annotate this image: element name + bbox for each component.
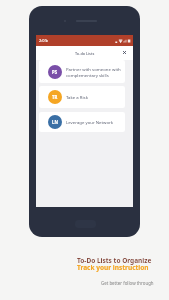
button[interactable]: PS [39,60,125,83]
staticText: Track your instruction [77,263,149,272]
staticText: LN [52,119,58,125]
staticText: Leverage your Network [66,119,114,125]
button[interactable]: LN [39,112,125,132]
staticText: Partner with someone with [66,66,121,72]
staticText: 2:01 [39,38,47,43]
staticText: To-Do Lists to Organize [77,256,152,265]
button[interactable]: TR [39,86,125,108]
staticText: PS [52,69,58,75]
staticText: Take a Risk [66,94,88,100]
button[interactable]: Close [121,49,127,55]
staticText: Get better follow through [101,280,154,286]
staticText: complementary skills [66,72,109,78]
staticText: To-do Lists [75,51,95,56]
staticText: TR [52,94,58,100]
